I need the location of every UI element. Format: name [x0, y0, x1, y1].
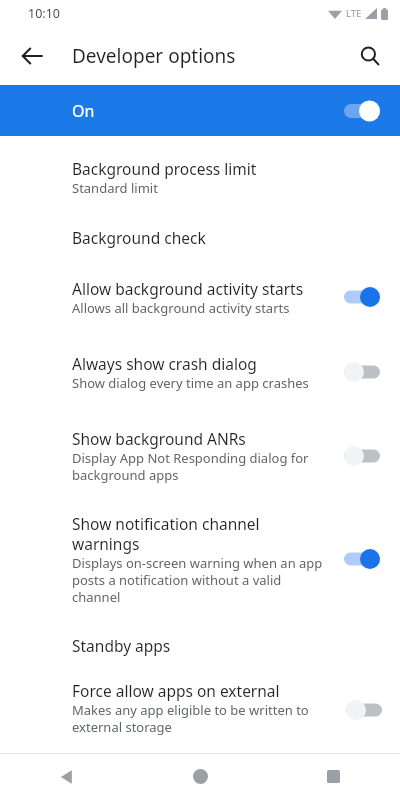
button[interactable]: Background check — [0, 220, 400, 254]
staticText: Allows all background activity starts — [72, 299, 290, 317]
button[interactable]: Search — [348, 34, 392, 78]
button[interactable]: Force allow apps on external — [0, 680, 400, 740]
staticText: Force allow apps on external — [72, 680, 280, 701]
staticText: Always show crash dialog — [72, 353, 257, 374]
staticText: Background process limit — [72, 158, 257, 179]
button[interactable]: Background process limit — [0, 150, 400, 204]
staticText: Show dialog every time an app crashes — [72, 374, 309, 392]
button[interactable]: Allow background activity starts — [0, 270, 400, 324]
staticText: LTE — [346, 7, 362, 20]
button[interactable]: Back — [10, 34, 54, 78]
button[interactable]: On — [0, 85, 400, 136]
button[interactable]: Back — [0, 753, 134, 800]
staticText: Show notification channel warnings — [72, 513, 324, 554]
button[interactable]: Standby apps — [0, 628, 400, 662]
button[interactable]: Recent apps — [267, 753, 400, 800]
staticText: Standard limit — [72, 179, 158, 197]
staticText: Display App Not Responding dialog for ba… — [72, 449, 324, 484]
staticText: Makes any app eligible to be written to … — [72, 701, 324, 736]
staticText: On — [72, 100, 95, 122]
staticText: Displays on-screen warning when an app p… — [72, 554, 324, 606]
button[interactable]: Show background ANRs — [0, 420, 400, 492]
staticText: Standby apps — [72, 635, 171, 656]
staticText: Allow background activity starts — [72, 278, 304, 299]
button[interactable]: Home — [134, 753, 267, 800]
staticText: Developer options — [72, 43, 236, 69]
button[interactable]: Show notification channel warnings — [0, 504, 400, 614]
staticText: Show background ANRs — [72, 428, 246, 449]
button[interactable]: Always show crash dialog — [0, 336, 400, 408]
staticText: 10:10 — [28, 5, 60, 22]
staticText: Background check — [72, 227, 206, 248]
